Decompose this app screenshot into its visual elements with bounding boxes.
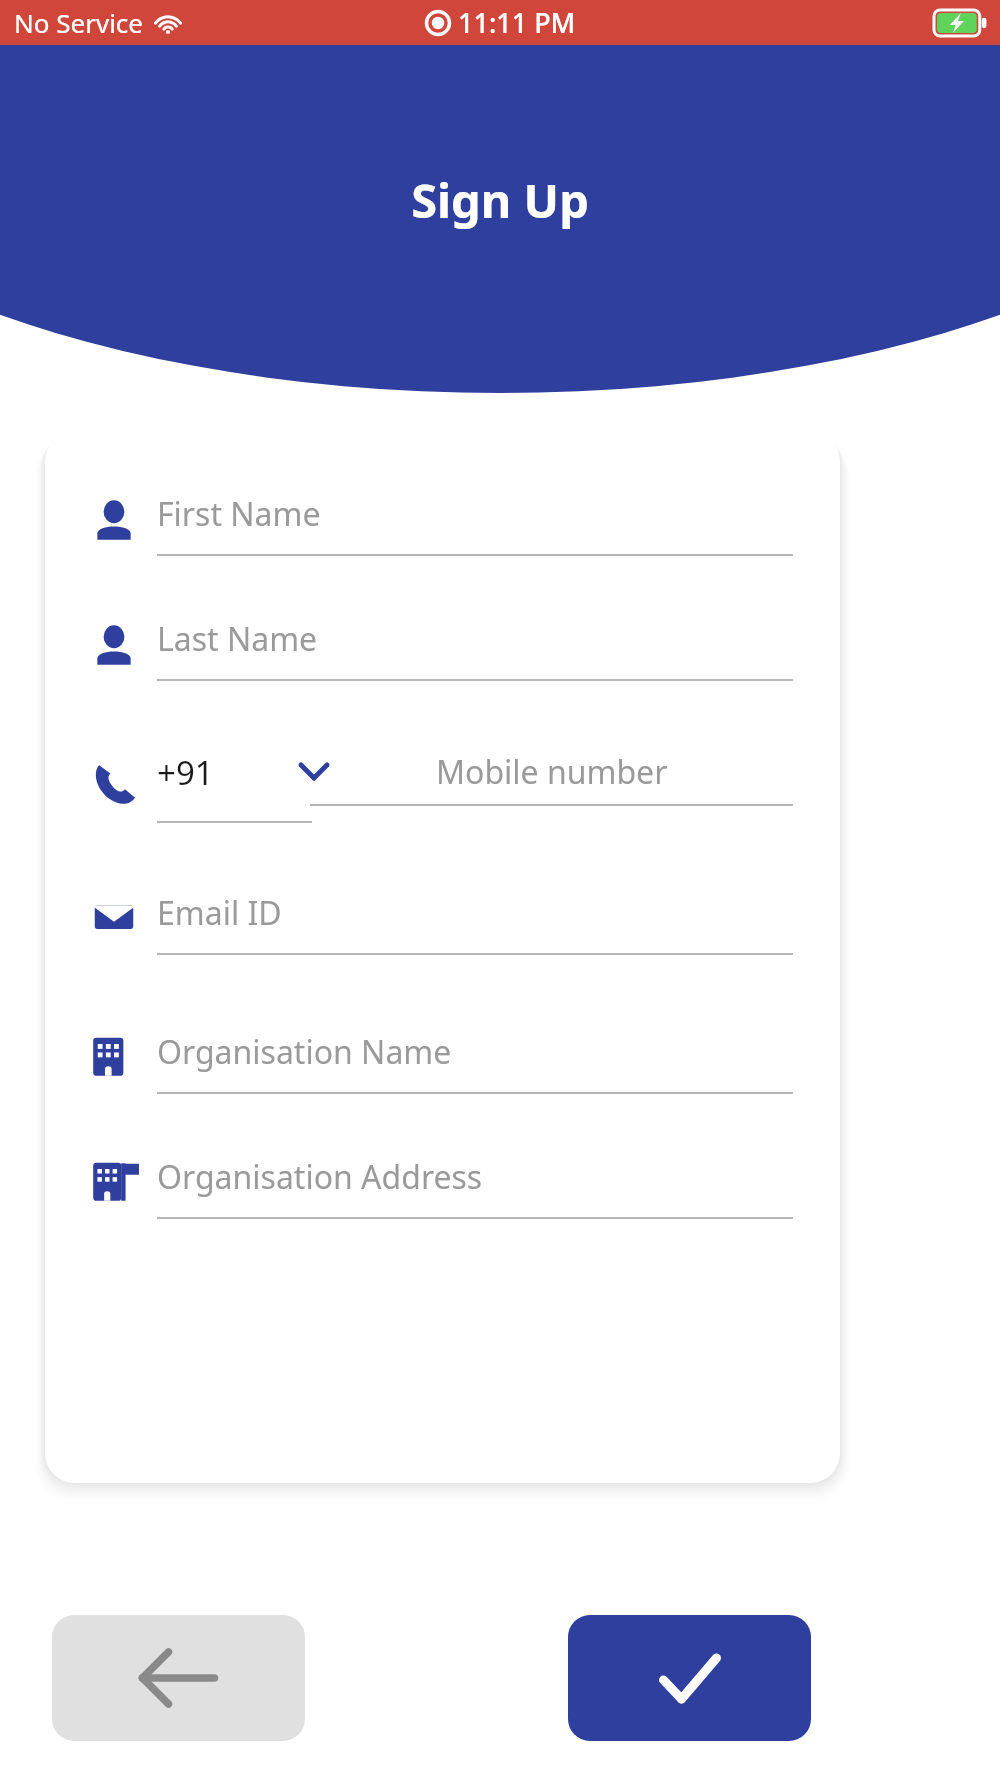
staticText: Sign Up	[0, 168, 1000, 232]
staticText: First Name	[157, 492, 321, 536]
button[interactable]: Organisation Address	[157, 1137, 793, 1237]
button[interactable]: Back	[52, 1615, 305, 1741]
staticText: Organisation Address	[157, 1155, 483, 1199]
button[interactable]: Confirm	[568, 1615, 811, 1741]
staticText: Mobile number	[436, 750, 668, 794]
staticText: +91	[157, 750, 214, 795]
button[interactable]: Email ID	[157, 873, 793, 973]
staticText: 11:11 PM	[458, 4, 576, 41]
staticText: No Service	[14, 5, 143, 40]
staticText: Email ID	[157, 891, 282, 935]
button[interactable]: Last Name	[157, 599, 793, 699]
button[interactable]: First Name	[157, 474, 793, 574]
staticText: Last Name	[157, 617, 318, 661]
button[interactable]: +91	[157, 736, 312, 836]
button[interactable]: Mobile number	[310, 736, 793, 836]
staticText: Organisation Name	[157, 1030, 452, 1074]
button[interactable]: Organisation Name	[157, 1012, 793, 1112]
button[interactable]: Select country code	[293, 750, 335, 792]
